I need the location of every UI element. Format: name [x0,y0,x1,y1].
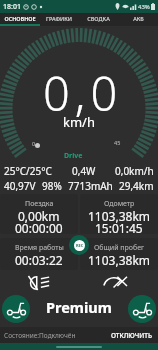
staticText: 40,97V [4,179,36,193]
staticText: СВОДКА [87,15,110,22]
button[interactable]: ОТКЛЮЧИТЬ [109,329,154,342]
staticText: 0,00km [18,208,60,224]
button[interactable]: Поездка [0,194,78,234]
staticText: 00:00:00 [15,220,63,234]
staticText: ОСНОВНОЕ [4,15,36,22]
button[interactable]: Scooter [128,295,156,323]
staticText: 00:03:22 [15,252,63,268]
staticText: АКБ [133,15,144,22]
button[interactable]: Scooter [2,295,30,323]
staticText: 0,4W [72,164,96,178]
staticText: 0,0 [43,61,123,125]
staticText: 18:01 [3,2,21,12]
button[interactable]: Record [69,235,89,255]
staticText: 29,4km [119,179,154,193]
staticText: Общий пробег [94,243,145,253]
staticText: 15:01:45 [95,220,143,234]
staticText: REC [76,243,84,248]
staticText: 0 [32,140,36,147]
staticText: Время работы [15,243,64,253]
button[interactable]: Одометр [80,194,158,234]
staticText: 45 [114,139,121,146]
button[interactable]: Время работы [0,238,78,270]
staticText: 25°C/25°C [4,164,52,178]
staticText: km/h [63,113,95,131]
button[interactable]: ГРАФИКИ [39,13,78,24]
staticText: 43% [138,3,150,11]
staticText: 0,0km/h [115,164,154,178]
staticText: 1103,38km [88,208,151,224]
staticText: 98% [42,179,62,193]
staticText: ГРАФИКИ [46,15,72,22]
button[interactable]: Headlight off [28,276,51,290]
button[interactable]: Общий пробег [80,238,158,270]
staticText: Drive [64,151,83,161]
staticText: 7713mAh [68,179,113,193]
staticText: ОТКЛЮЧИТЬ [111,331,152,340]
staticText: Premium [46,297,112,317]
button[interactable]: СВОДКА [78,13,118,24]
staticText: Состояние:Подключён [4,331,76,340]
button[interactable]: АКБ [118,13,158,24]
button[interactable]: Cruise control off [103,276,127,290]
staticText: 1103,38km [88,252,151,268]
button[interactable]: ОСНОВНОЕ [0,13,39,24]
staticText: Поездка [25,199,54,209]
staticText: Одометр [104,199,135,209]
